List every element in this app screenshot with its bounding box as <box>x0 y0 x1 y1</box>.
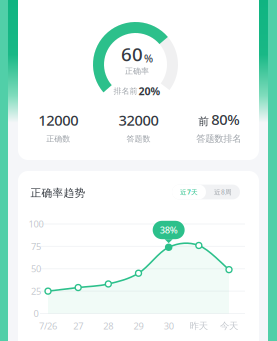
staticText: 前 <box>198 115 209 128</box>
staticText: 正确率趋势 <box>30 186 85 199</box>
staticText: 近7天 <box>180 188 198 196</box>
staticText: 50 <box>31 263 41 275</box>
staticText: 20% <box>138 84 160 98</box>
staticText: 昨天 <box>190 320 208 332</box>
staticText: 0 <box>33 307 38 320</box>
staticText: 27 <box>73 320 83 332</box>
staticText: 答题数排名 <box>196 133 241 144</box>
staticText: % <box>144 51 153 65</box>
staticText: 80% <box>211 109 239 129</box>
staticText: 7/26 <box>39 320 57 332</box>
staticText: 近8周 <box>214 188 232 196</box>
staticText: 30 <box>164 320 174 332</box>
staticText: 100 <box>28 218 43 230</box>
staticText: 32000 <box>118 110 158 130</box>
staticText: 25 <box>31 285 41 297</box>
staticText: 正确数 <box>46 134 70 144</box>
staticText: 60 <box>121 42 143 66</box>
button[interactable]: 近7天 <box>172 185 206 199</box>
button[interactable]: 近8周 <box>206 185 240 199</box>
staticText: 答题数 <box>126 134 150 144</box>
staticText: 38% <box>160 224 178 236</box>
staticText: 今天 <box>220 320 238 332</box>
staticText: 12000 <box>38 110 78 130</box>
staticText: 排名前 <box>113 86 137 96</box>
staticText: 75 <box>31 240 41 253</box>
staticText: 28 <box>103 320 113 332</box>
staticText: 正确率 <box>125 66 149 76</box>
staticText: 29 <box>133 320 143 332</box>
